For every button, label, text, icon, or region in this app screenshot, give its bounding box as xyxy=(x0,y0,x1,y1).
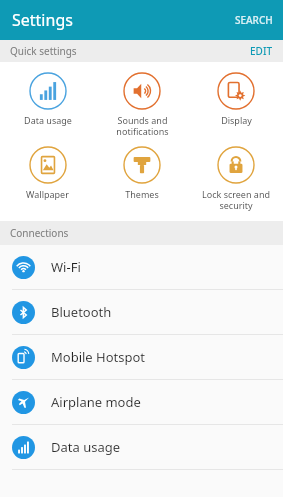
staticText: Wi-Fi xyxy=(51,258,81,276)
staticText: Mobile Hotspot xyxy=(51,348,146,366)
button[interactable]: Wallpaper xyxy=(0,143,95,203)
button[interactable]: Data usage xyxy=(0,425,283,470)
staticText: Quick settings xyxy=(10,44,77,58)
staticText: Sounds and notifications xyxy=(116,114,169,137)
button[interactable]: Display xyxy=(189,69,283,129)
button[interactable]: Airplane mode xyxy=(0,380,283,425)
staticText: Settings xyxy=(12,9,73,31)
staticText: Lock screen and security xyxy=(202,188,270,211)
staticText: Display xyxy=(221,114,252,126)
staticText: Connections xyxy=(10,226,69,240)
staticText: Airplane mode xyxy=(51,393,141,411)
button[interactable]: Bluetooth xyxy=(0,290,283,335)
button[interactable]: Data usage xyxy=(0,69,95,129)
staticText: Data usage xyxy=(51,438,121,456)
staticText: Themes xyxy=(125,188,159,200)
button[interactable]: Mobile Hotspot xyxy=(0,335,283,380)
staticText: EDIT xyxy=(250,44,273,58)
button[interactable]: Themes xyxy=(95,143,189,203)
staticText: SEARCH xyxy=(235,13,273,27)
button[interactable]: Sounds and notifications xyxy=(95,69,189,140)
button[interactable]: EDIT xyxy=(240,40,283,62)
button[interactable]: Wi-Fi xyxy=(0,245,283,290)
staticText: Wallpaper xyxy=(26,188,69,200)
staticText: Data usage xyxy=(24,114,72,126)
staticText: Bluetooth xyxy=(51,303,112,321)
button[interactable]: SEARCH xyxy=(225,4,283,36)
button[interactable]: Lock screen and security xyxy=(189,143,283,214)
